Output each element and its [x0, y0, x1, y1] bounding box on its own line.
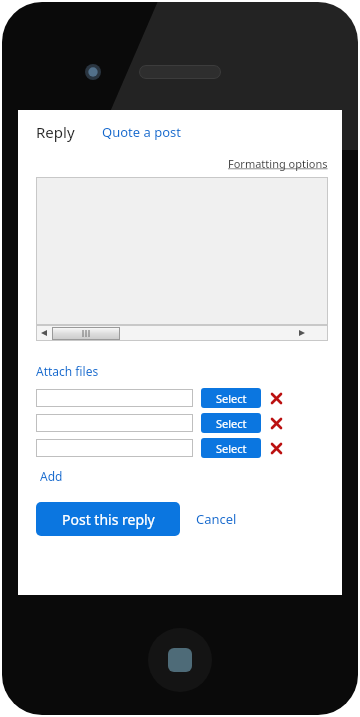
button[interactable]: Remove attachment — [267, 439, 285, 457]
staticText: Formatting options — [228, 156, 328, 171]
button[interactable] — [36, 414, 193, 432]
button[interactable]: Scroll right — [294, 326, 310, 340]
button[interactable]: Select — [201, 388, 261, 408]
button[interactable] — [36, 177, 328, 325]
button[interactable]: Add — [40, 468, 63, 484]
button[interactable] — [36, 389, 193, 407]
button[interactable]: Scroll left — [36, 326, 52, 340]
button[interactable]: Remove attachment — [267, 414, 285, 432]
button[interactable]: Remove attachment — [267, 389, 285, 407]
button[interactable]: Cancel — [196, 510, 237, 528]
button[interactable]: Select — [201, 438, 261, 458]
staticText: Select — [216, 416, 247, 431]
button[interactable] — [52, 327, 120, 340]
staticText: Select — [216, 391, 247, 406]
staticText: Cancel — [196, 510, 237, 528]
staticText: Reply — [36, 122, 75, 142]
button[interactable]: Select — [201, 413, 261, 433]
button[interactable]: Post this reply — [36, 502, 180, 536]
staticText: Attach files — [36, 363, 99, 379]
staticText: Quote a post — [102, 123, 181, 141]
button[interactable]: Formatting options — [228, 156, 328, 171]
button[interactable] — [36, 439, 193, 457]
staticText: Post this reply — [62, 510, 155, 529]
button[interactable]: Home — [148, 628, 212, 692]
button[interactable]: Quote a post — [102, 123, 181, 141]
staticText: Add — [40, 468, 63, 484]
staticText: Select — [216, 441, 247, 456]
